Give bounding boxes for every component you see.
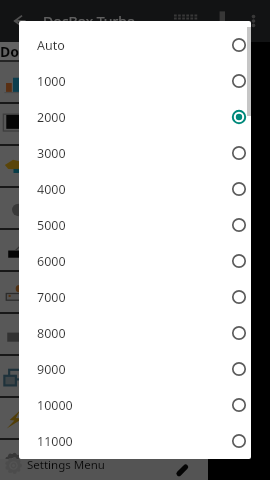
button[interactable]: Power [0,272,208,314]
staticText: Storage [34,327,78,343]
staticText: Auto [37,37,65,54]
staticText: 10000 [37,397,73,414]
button[interactable]: 11000 [19,423,251,459]
button[interactable]: Edit [174,460,192,478]
staticText: Settings Menu [27,457,105,473]
staticText: Quality [34,75,75,91]
staticText: Keyboard [34,243,88,259]
button[interactable]: 3000 [19,135,251,171]
button[interactable]: 8000 [19,315,251,351]
button[interactable]: 10000 [19,387,251,423]
button[interactable]: 1000 [19,63,251,99]
button[interactable]: Advanced [0,440,208,480]
button[interactable]: 7000 [19,279,251,315]
staticText: 4000 [37,181,66,198]
staticText: Advanced [34,452,90,468]
staticText: Power [34,285,70,301]
button[interactable]: Display [0,104,208,146]
staticText: Sharing [34,369,78,385]
staticText: 1000 [37,73,66,90]
button[interactable]: Performance [0,398,208,440]
button[interactable]: Storage [0,314,208,356]
button[interactable]: 9000 [19,351,251,387]
button[interactable]: Auto [19,27,251,63]
button[interactable]: Settings Menu [0,459,208,480]
staticText: 5000 [37,217,66,234]
button[interactable]: Keyboard [0,230,208,272]
staticText: DocBox Turbo [43,12,136,31]
staticText: 2000 [37,109,66,126]
button[interactable]: Quality [0,62,208,104]
button[interactable]: Grid view [170,8,202,34]
staticText: Document settings [0,42,133,61]
staticText: 9000 [37,361,66,378]
button[interactable]: More options [243,8,264,34]
button[interactable]: Sound [0,188,208,230]
staticText: 11000 [37,433,73,450]
staticText: 7000 [37,289,66,306]
staticText: 6000 [37,253,66,270]
staticText: 8000 [37,325,66,342]
button[interactable]: 6000 [19,243,251,279]
staticText: Display [34,117,75,133]
staticText: 3000 [37,145,66,162]
button[interactable]: 4000 [19,171,251,207]
button[interactable]: Print [213,6,233,30]
button[interactable]: 5000 [19,207,251,243]
button[interactable]: Sharing [0,356,208,398]
button[interactable]: Gestures [0,146,208,188]
button[interactable]: 2000 [19,99,251,135]
button[interactable]: Back [4,6,34,36]
